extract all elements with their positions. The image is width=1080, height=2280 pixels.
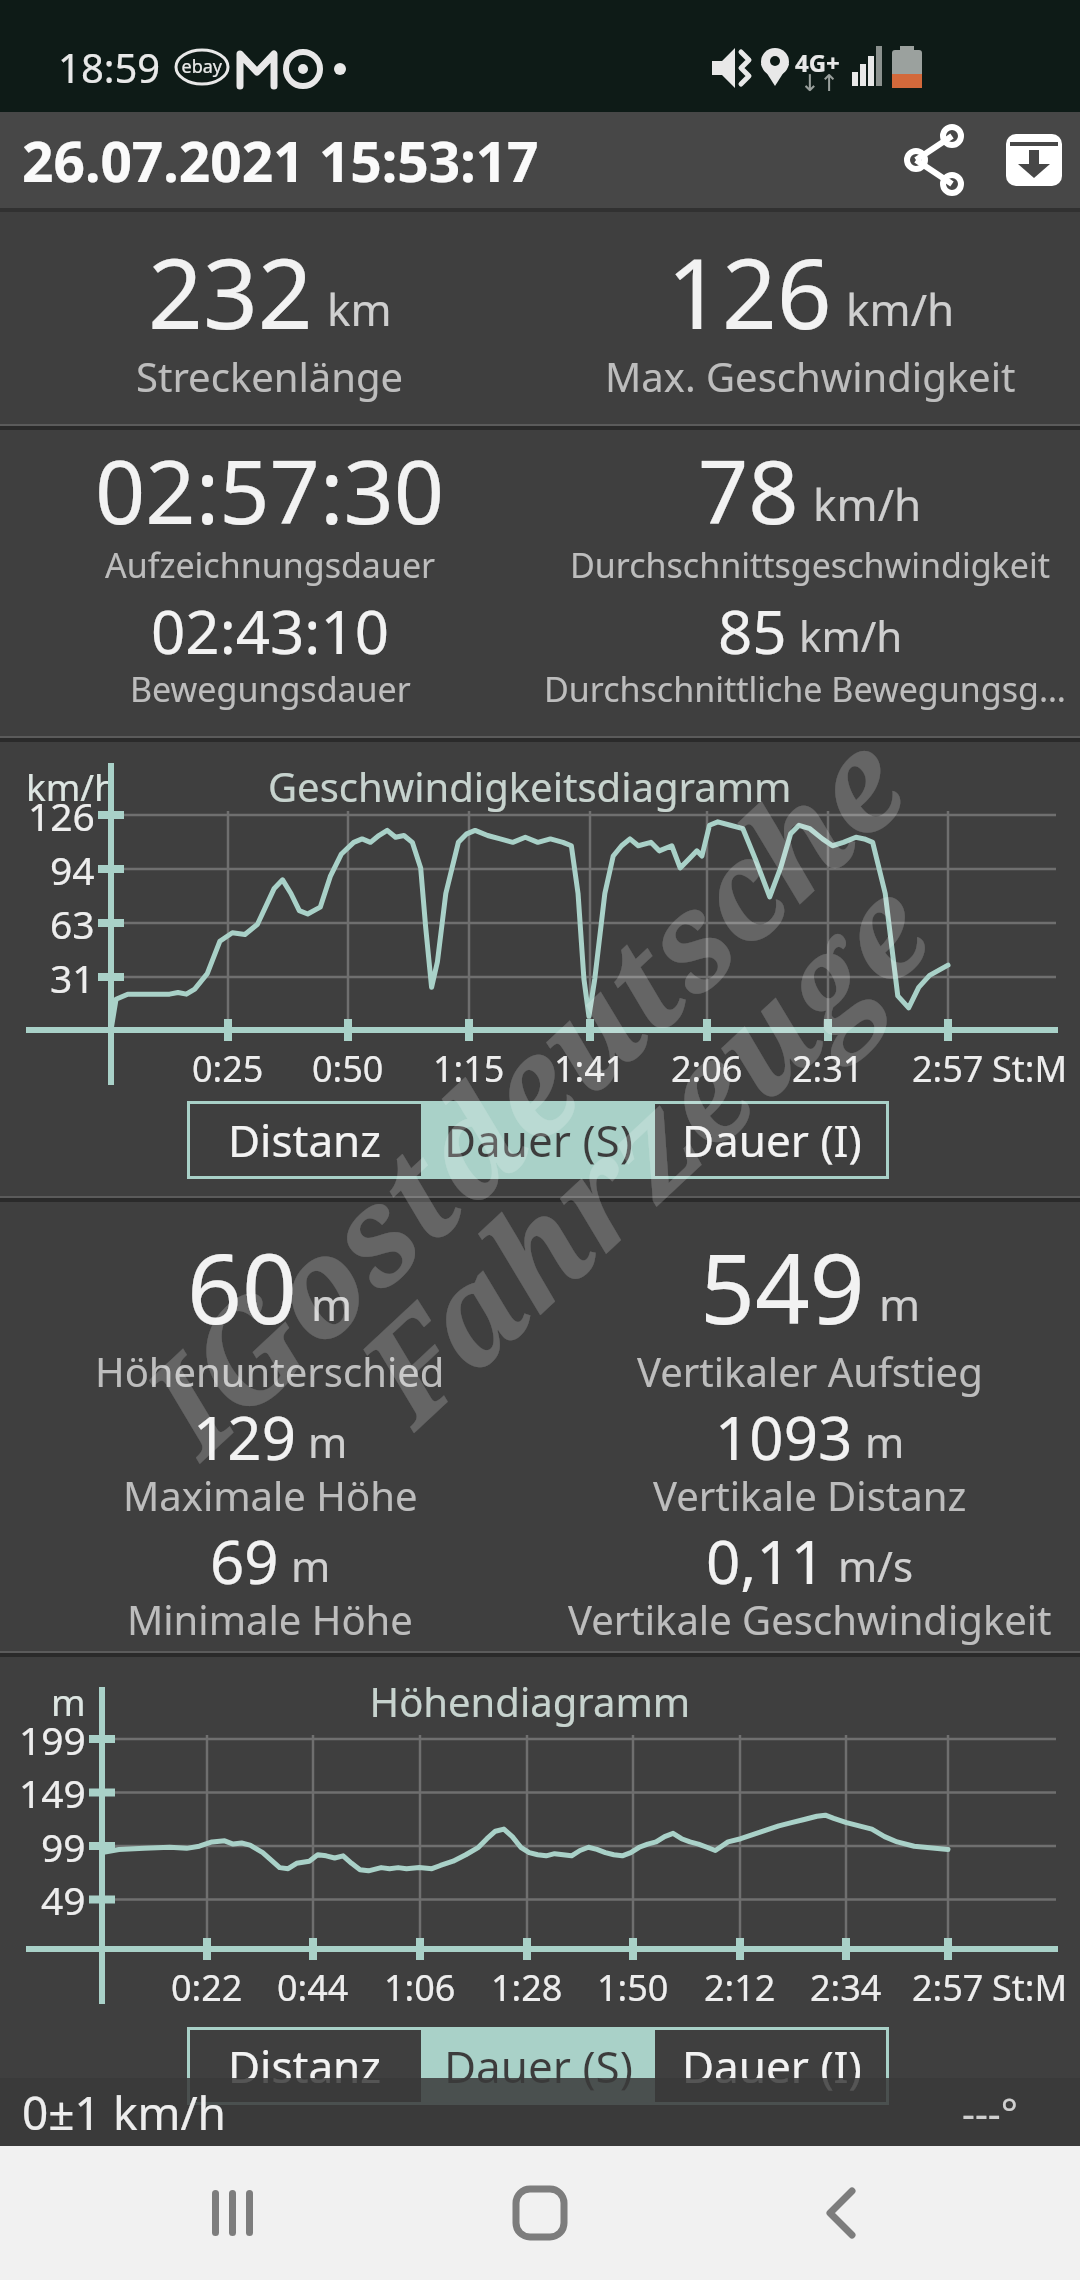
staticText: m — [879, 1274, 921, 1334]
staticText: Dauer (S) — [444, 2036, 633, 2096]
staticText: 129 — [193, 1396, 296, 1478]
staticText: Durchschnittliche Bewegungsgeschwind… — [544, 666, 1076, 712]
staticText: m/s — [838, 1537, 914, 1594]
staticText: Vertikale Distanz — [653, 1468, 967, 1522]
staticText: 1093 — [715, 1396, 853, 1478]
button[interactable]: Dauer (I) — [655, 2027, 889, 2105]
staticText: 60 — [187, 1221, 297, 1352]
staticText: m — [291, 1537, 331, 1594]
staticText: km/h — [813, 474, 922, 534]
staticText: Minimale Höhe — [127, 1592, 413, 1646]
staticText: 69 — [210, 1520, 279, 1602]
staticText: 78 — [698, 430, 799, 550]
button[interactable]: Distanz — [187, 2027, 421, 2105]
staticText: 232 — [148, 226, 313, 357]
staticText: Distanz — [228, 2036, 381, 2096]
staticText: km/h — [799, 607, 903, 664]
staticText: km/h — [846, 279, 955, 339]
staticText: Streckenlänge — [136, 349, 404, 403]
staticText: IGostdeutsche — [105, 692, 942, 1491]
staticText: Dauer (I) — [682, 1110, 862, 1170]
staticText: Aufzeichnungsdauer — [105, 542, 436, 588]
staticText: Maximale Höhe — [123, 1468, 418, 1522]
staticText: 549 — [700, 1221, 865, 1352]
staticText: m — [308, 1413, 348, 1470]
staticText: Durchschnittsgeschwindigkeit — [570, 542, 1050, 588]
staticText: 02:43:10 — [151, 590, 390, 672]
staticText: 0,11 — [706, 1520, 826, 1602]
staticText: Dauer (I) — [682, 2036, 862, 2096]
staticText: Fahrzeuge — [319, 839, 966, 1460]
button[interactable]: Dauer (I) — [655, 1101, 889, 1179]
staticText: 26.07.2021 15:53:17 — [22, 123, 539, 198]
staticText: Max. Geschwindigkeit — [605, 349, 1016, 403]
staticText: 126 — [667, 226, 832, 357]
staticText: Bewegungsdauer — [130, 666, 411, 712]
button[interactable] — [794, 2165, 890, 2261]
staticText: Vertikaler Aufstieg — [637, 1344, 983, 1398]
staticText: 85 — [718, 590, 787, 672]
staticText: m — [865, 1413, 905, 1470]
staticText: Dauer (S) — [444, 1110, 633, 1170]
staticText: m — [311, 1274, 353, 1334]
staticText: Distanz — [228, 1110, 381, 1170]
staticText: 02:57:30 — [95, 430, 445, 550]
button[interactable] — [492, 2165, 588, 2261]
button[interactable] — [898, 124, 970, 196]
button[interactable] — [1004, 130, 1064, 190]
staticText: km — [327, 279, 392, 339]
staticText: 0±1 km/h — [22, 2081, 227, 2144]
button[interactable] — [190, 2165, 286, 2261]
button[interactable]: Dauer (S) — [421, 2027, 655, 2105]
staticText: ---° — [962, 2085, 1018, 2139]
button[interactable]: Dauer (S) — [421, 1101, 655, 1179]
staticText: Vertikale Geschwindigkeit — [568, 1592, 1052, 1646]
staticText: Höhenunterschied — [95, 1344, 445, 1398]
button[interactable]: Distanz — [187, 1101, 421, 1179]
